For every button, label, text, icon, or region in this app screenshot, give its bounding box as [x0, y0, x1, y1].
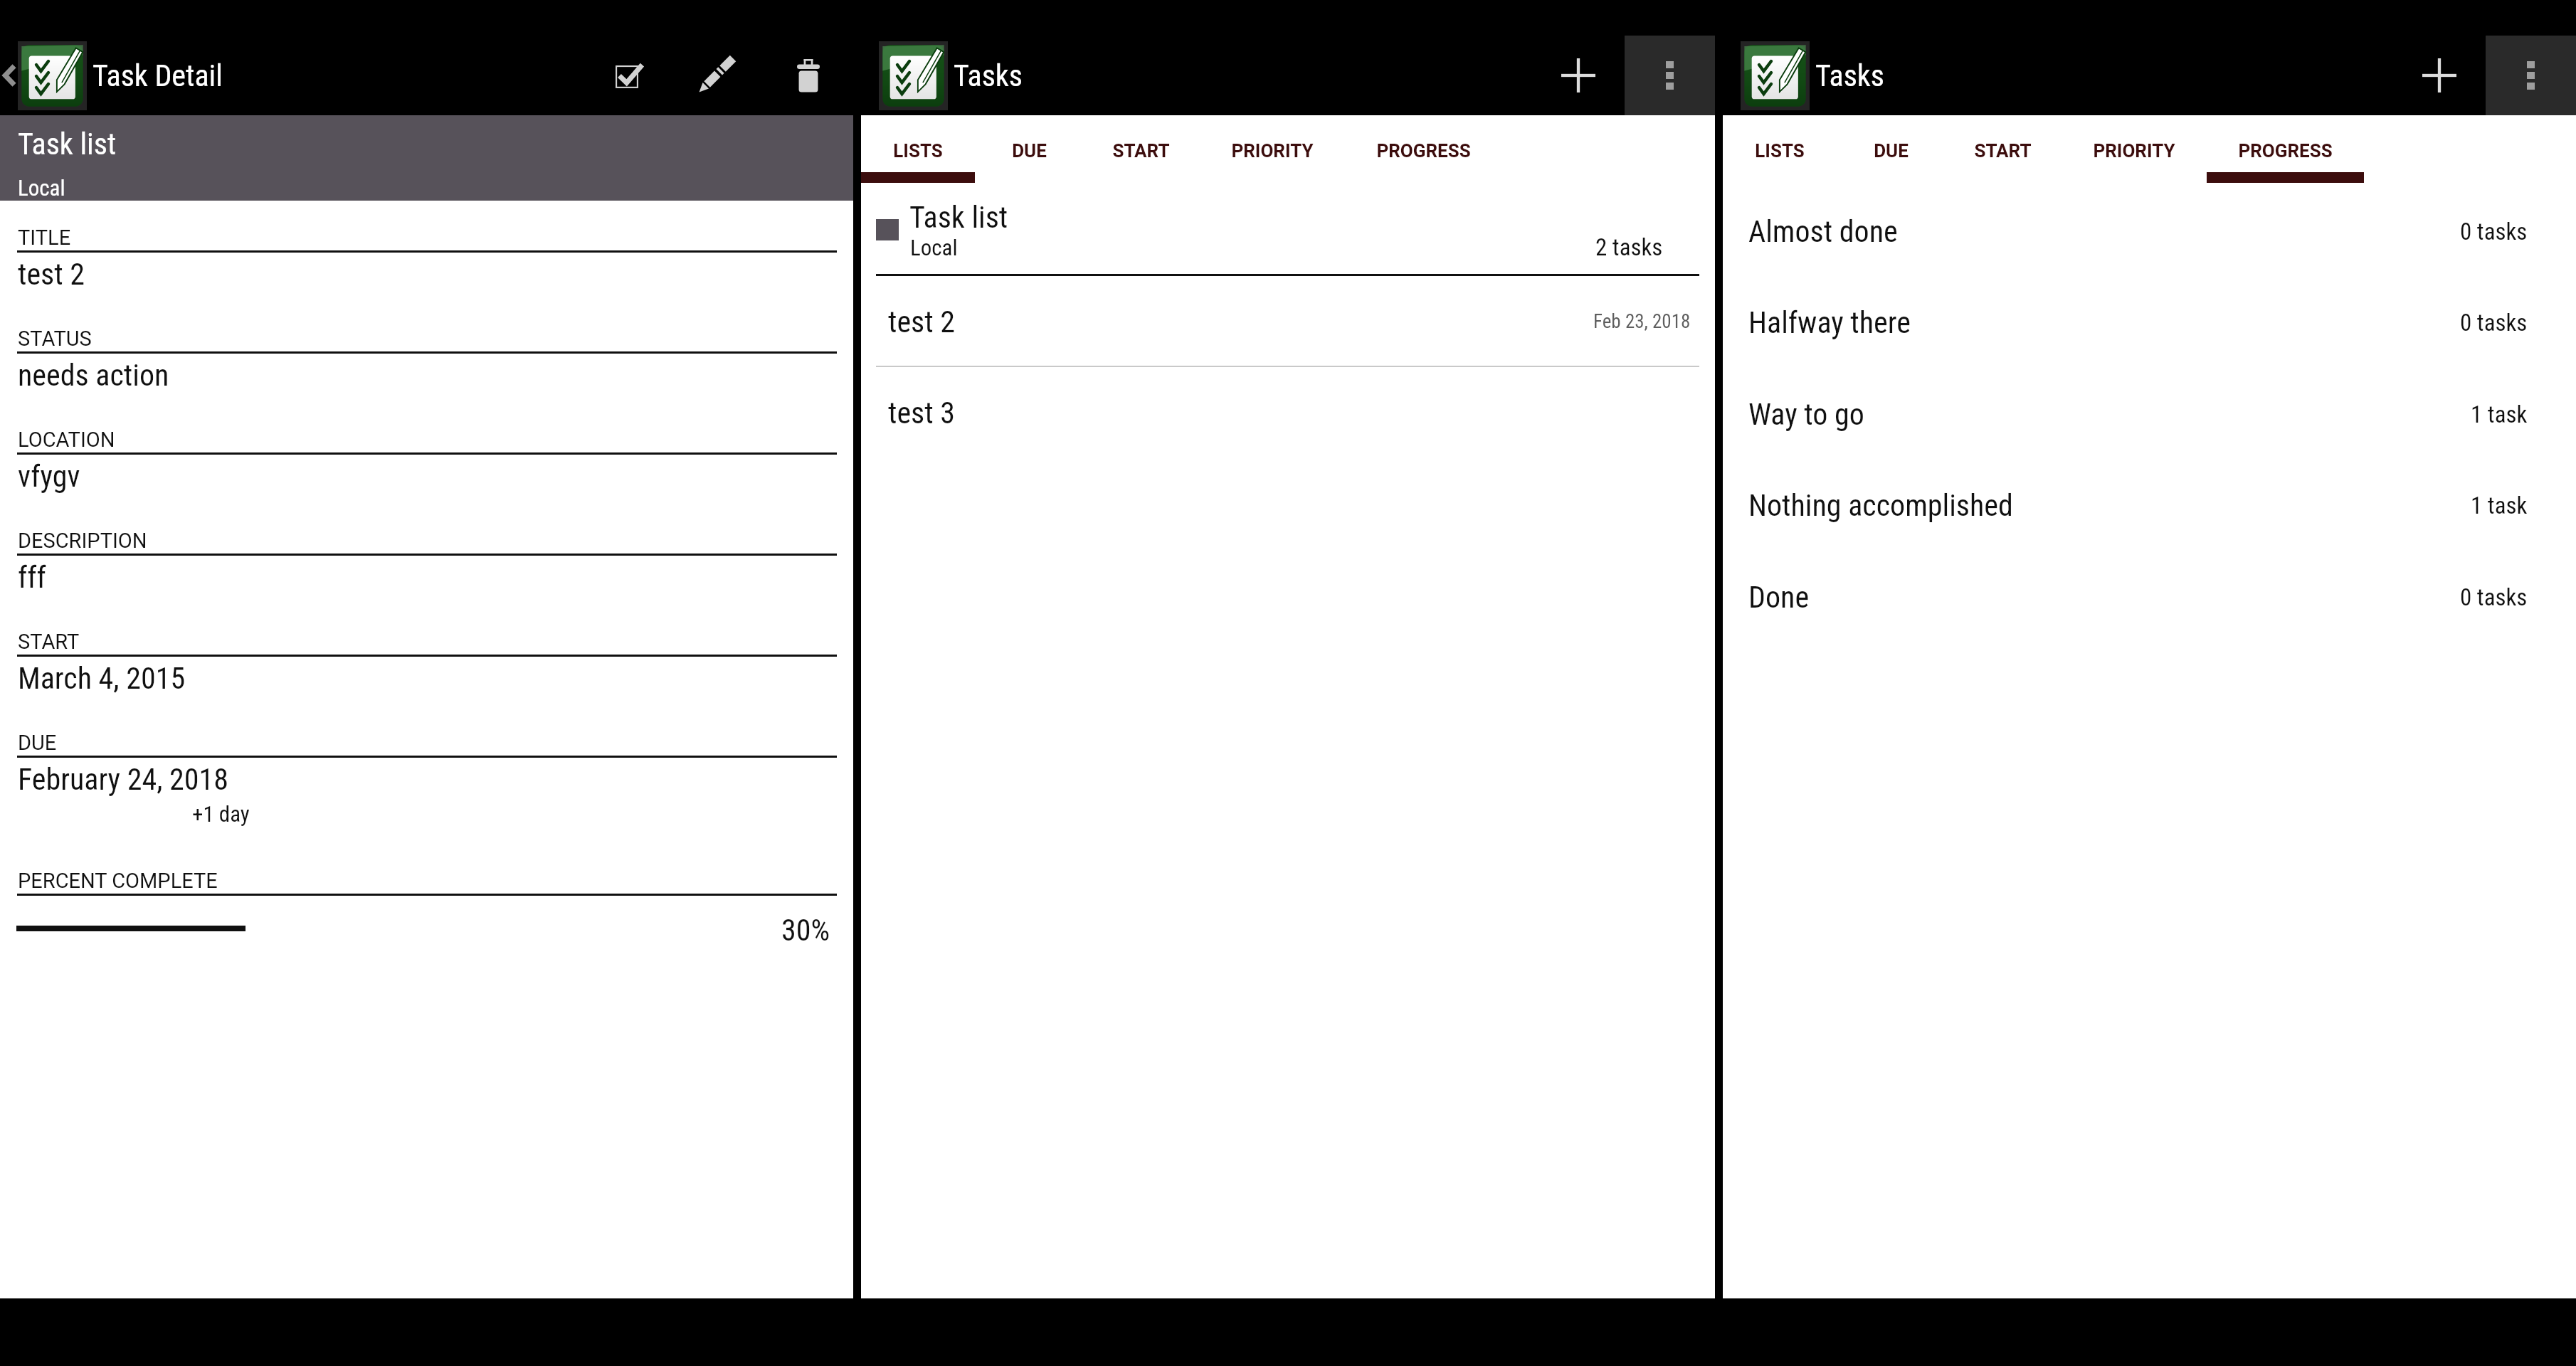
button[interactable]: START [0, 605, 853, 706]
staticText: DUE [1874, 140, 1909, 162]
staticText: March 4, 2015 [18, 661, 186, 696]
button[interactable]: TITLE [0, 201, 853, 302]
button[interactable]: test 2 [861, 276, 1715, 367]
staticText: Local [18, 175, 65, 201]
button[interactable]: START [1945, 115, 2061, 172]
staticText: test 3 [888, 396, 956, 430]
staticText: fff [18, 560, 46, 595]
button[interactable]: Task list [861, 183, 1715, 274]
button[interactable]: Nothing accomplished [1723, 460, 2576, 551]
staticText: STATUS [18, 327, 92, 351]
button[interactable]: PROGRESS [2207, 115, 2364, 172]
button[interactable]: LISTS [1723, 115, 1837, 172]
staticText: Task Detail [93, 58, 223, 93]
button[interactable]: PERCENT COMPLETE [0, 844, 853, 958]
staticText: LISTS [1755, 140, 1805, 162]
button[interactable]: Way to go [1723, 369, 2576, 460]
button[interactable]: Tasks [1723, 36, 1884, 115]
staticText: vfygv [18, 459, 80, 494]
button[interactable]: Almost done [1723, 186, 2576, 277]
staticText: 1 task [2471, 492, 2528, 519]
button[interactable]: Delete [764, 36, 853, 115]
button[interactable]: PRIORITY [2061, 115, 2207, 172]
button[interactable]: PROGRESS [1345, 115, 1502, 172]
button[interactable]: STATUS [0, 302, 853, 403]
staticText: Tasks [1815, 58, 1884, 93]
staticText: 0 tasks [2460, 309, 2528, 337]
staticText: DUE [18, 731, 57, 755]
button[interactable]: Task Detail [18, 36, 223, 115]
staticText: 0 tasks [2460, 218, 2528, 245]
button[interactable]: More options [2486, 36, 2576, 115]
button[interactable]: Back [0, 36, 18, 115]
button[interactable]: LOCATION [0, 403, 853, 504]
staticText: Local [910, 235, 958, 260]
staticText: START [1974, 140, 2032, 162]
button[interactable]: START [1083, 115, 1199, 172]
staticText: needs action [18, 358, 169, 393]
button[interactable]: DUE [1837, 115, 1945, 172]
staticText: Task list [18, 127, 117, 162]
staticText: PROGRESS [2238, 140, 2333, 162]
button[interactable]: PRIORITY [1199, 115, 1345, 172]
button[interactable]: LISTS [861, 115, 975, 172]
staticText: 2 tasks [1595, 233, 1663, 261]
staticText: Halfway there [1748, 305, 1911, 340]
staticText: PERCENT COMPLETE [18, 869, 218, 893]
button[interactable]: Halfway there [1723, 277, 2576, 369]
button[interactable]: Done [1723, 551, 2576, 643]
staticText: START [18, 630, 80, 654]
staticText: Almost done [1748, 214, 1898, 249]
staticText: Feb 23, 2018 [1593, 310, 1691, 333]
button[interactable]: Add task [2393, 36, 2486, 115]
staticText: Nothing accomplished [1748, 488, 2013, 523]
staticText: Tasks [954, 58, 1023, 93]
staticText: +1 day [192, 801, 250, 827]
staticText: LOCATION [18, 428, 115, 452]
staticText: test 2 [18, 257, 85, 292]
staticText: PRIORITY [2093, 140, 2175, 162]
staticText: test 2 [888, 305, 956, 339]
staticText: 0 tasks [2460, 583, 2528, 611]
staticText: February 24, 2018 [18, 762, 228, 797]
button[interactable]: Tasks [861, 36, 1023, 115]
staticText: Way to go [1748, 397, 1864, 432]
staticText: LISTS [893, 140, 943, 162]
button[interactable]: DUE [975, 115, 1083, 172]
staticText: 30% [781, 913, 830, 948]
button[interactable]: Add task [1532, 36, 1625, 115]
button[interactable]: Task list [0, 115, 853, 201]
button[interactable]: test 3 [861, 367, 1715, 458]
button[interactable]: Edit [674, 36, 764, 115]
staticText: PROGRESS [1376, 140, 1471, 162]
staticText: 1 task [2471, 401, 2528, 428]
button[interactable]: More options [1625, 36, 1715, 115]
staticText: Done [1748, 580, 1810, 615]
button[interactable]: DESCRIPTION [0, 504, 853, 605]
button[interactable]: DUE [0, 706, 853, 844]
staticText: TITLE [18, 226, 71, 250]
staticText: Task list [909, 200, 1008, 235]
staticText: DESCRIPTION [18, 529, 147, 553]
staticText: START [1112, 140, 1170, 162]
staticText: DUE [1012, 140, 1047, 162]
button[interactable]: Mark complete [584, 36, 674, 115]
staticText: PRIORITY [1231, 140, 1314, 162]
